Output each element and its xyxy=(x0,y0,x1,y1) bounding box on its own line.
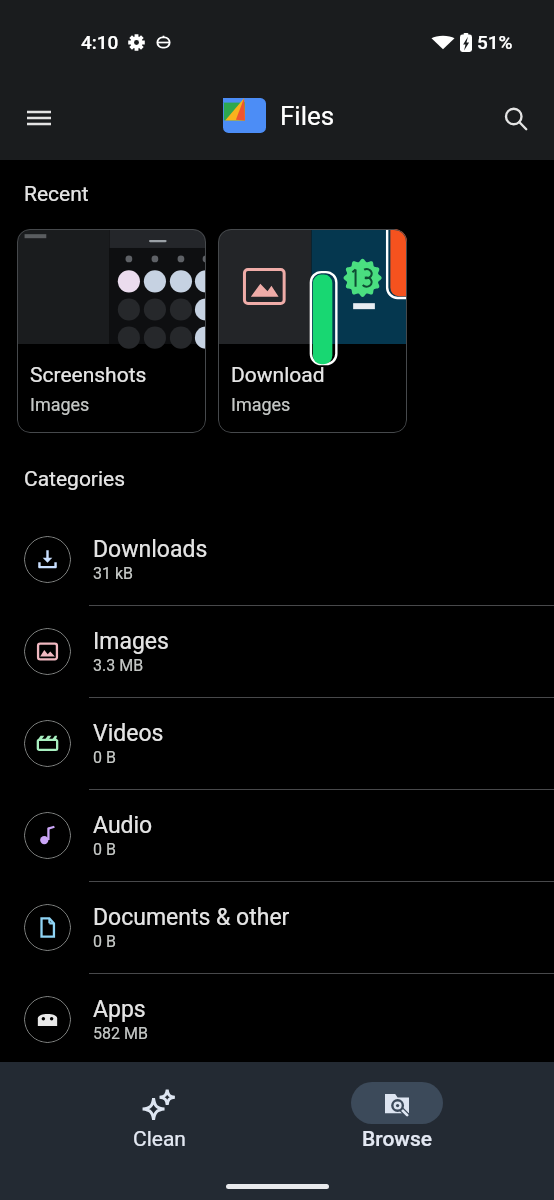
staticText: 0 B xyxy=(93,748,116,767)
staticText: Downloads xyxy=(93,536,208,563)
staticText: Download xyxy=(231,363,325,388)
button[interactable]: Clean xyxy=(113,1062,205,1152)
staticText: Files xyxy=(280,101,335,131)
staticText: Images xyxy=(231,394,291,415)
staticText: Documents & other xyxy=(93,904,290,931)
staticText: Videos xyxy=(93,720,164,747)
staticText: 3.3 MB xyxy=(93,656,144,675)
button[interactable]: Screenshots xyxy=(17,229,206,433)
button[interactable]: Audio xyxy=(0,790,554,882)
button[interactable]: Download xyxy=(218,229,407,433)
staticText: 51% xyxy=(477,31,513,53)
staticText: Audio xyxy=(93,812,153,839)
staticText: Categories xyxy=(24,467,126,492)
button[interactable]: Apps xyxy=(0,974,554,1066)
staticText: Clean xyxy=(133,1127,186,1152)
button[interactable]: Downloads xyxy=(0,514,554,606)
staticText: Recent xyxy=(24,182,89,207)
staticText: Browse xyxy=(362,1127,432,1152)
staticText: 0 B xyxy=(93,932,116,951)
staticText: 0 B xyxy=(93,840,116,859)
button[interactable]: Images xyxy=(0,606,554,698)
button[interactable]: Videos xyxy=(0,698,554,790)
staticText: 4:10 xyxy=(81,31,119,53)
staticText: Apps xyxy=(93,996,146,1023)
staticText: Images xyxy=(30,394,90,415)
staticText: 582 MB xyxy=(93,1024,148,1043)
button[interactable]: Browse xyxy=(351,1062,443,1152)
button[interactable]: Documents & other xyxy=(0,882,554,974)
staticText: Images xyxy=(93,628,169,655)
staticText: 31 kB xyxy=(93,564,134,583)
button[interactable]: Search xyxy=(491,94,539,142)
staticText: Screenshots xyxy=(30,363,147,388)
button[interactable]: Open navigation menu xyxy=(15,94,63,142)
